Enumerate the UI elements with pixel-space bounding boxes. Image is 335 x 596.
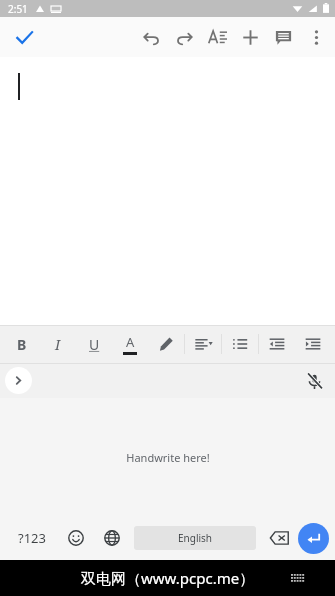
button[interactable]: Text color — [112, 325, 148, 363]
button[interactable]: Undo — [135, 17, 168, 57]
button[interactable]: Backspace — [260, 516, 298, 560]
button[interactable]: Microphone off — [299, 366, 329, 396]
button[interactable]: Align — [185, 325, 221, 363]
button[interactable]: Decrease indent — [259, 325, 295, 363]
button[interactable]: Emoji — [58, 516, 94, 560]
staticText: ?123 — [18, 529, 46, 547]
button[interactable]: Expand toolbar — [5, 367, 32, 394]
button[interactable]: English — [134, 526, 256, 550]
staticText: English — [178, 531, 213, 545]
button[interactable]: Increase indent — [295, 325, 331, 363]
staticText: 双电网（www.pcpc.me） — [81, 568, 255, 588]
staticText: A — [126, 333, 135, 351]
staticText: Handwrite here! — [126, 450, 210, 465]
button[interactable]: Redo — [168, 17, 201, 57]
button[interactable]: List — [222, 325, 258, 363]
button[interactable]: Italic — [40, 325, 76, 363]
staticText: U — [89, 335, 100, 354]
button[interactable]: Insert — [234, 17, 267, 57]
button[interactable]: Highlight — [148, 325, 184, 363]
button[interactable]: More options — [300, 17, 333, 57]
button[interactable]: ?123 — [6, 516, 58, 560]
staticText: I — [55, 335, 61, 354]
button[interactable]: Underline — [76, 325, 112, 363]
button[interactable]: Done — [6, 19, 42, 55]
staticText: B — [17, 335, 27, 354]
button[interactable]: Comments — [267, 17, 300, 57]
button[interactable]: Formatting — [201, 17, 234, 57]
staticText: 2:51 — [8, 2, 28, 16]
button[interactable]: Bold — [4, 325, 40, 363]
button[interactable]: Change language — [94, 516, 130, 560]
button[interactable]: Enter — [298, 523, 329, 554]
